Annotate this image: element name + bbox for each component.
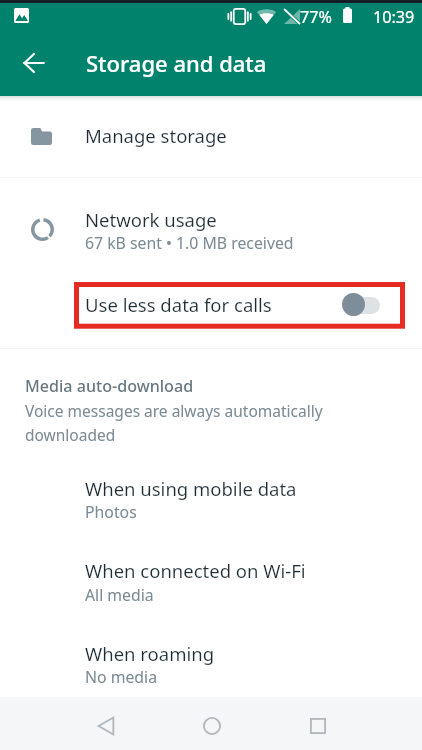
staticText: Manage storage [85,123,227,148]
staticText: Media auto-download [25,375,194,397]
button[interactable]: When using mobile data [0,442,422,525]
staticText: No media [85,666,158,688]
button[interactable]: Manage storage [0,96,422,177]
staticText: Photos [85,501,137,523]
button[interactable]: Back [11,41,55,85]
button[interactable]: Network usage [0,178,422,277]
staticText: Use less data for calls [85,292,272,317]
staticText: All media [85,584,154,606]
staticText: 77% [300,6,332,28]
button[interactable]: When roaming [0,608,422,691]
staticText: Voice messages are always automatically … [25,400,323,445]
button[interactable]: Back [83,697,128,750]
staticText: 10:39 [373,6,415,28]
button[interactable]: Use less data for calls [0,277,422,348]
staticText: When using mobile data [85,476,297,501]
staticText: Network usage [85,207,217,232]
staticText: When roaming [85,641,215,666]
button[interactable]: Use less data for calls [342,292,382,316]
button[interactable]: When connected on Wi-Fi [0,525,422,608]
staticText: 67 kB sent • 1.0 MB received [85,232,294,254]
button[interactable]: Recent apps [295,697,340,750]
staticText: Storage and data [86,48,267,78]
button[interactable]: Home [189,697,234,750]
staticText: When connected on Wi-Fi [85,558,306,583]
